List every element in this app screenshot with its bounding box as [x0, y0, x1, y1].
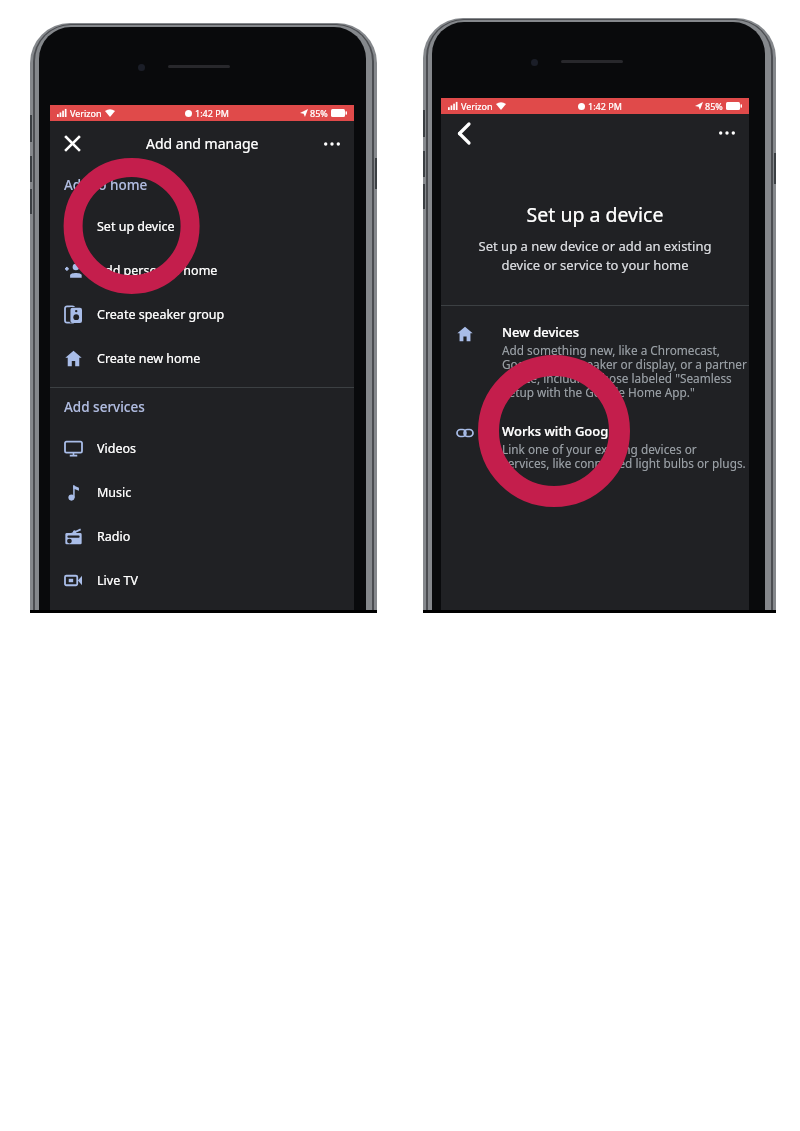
button[interactable]: More options — [705, 114, 749, 152]
staticText: Add services — [64, 398, 145, 416]
staticText: Music — [97, 484, 132, 501]
staticText: Live TV — [97, 572, 138, 589]
button[interactable]: Create speaker group — [50, 292, 354, 336]
staticText: Radio — [97, 528, 131, 545]
staticText: Works with Google — [502, 422, 620, 440]
button[interactable]: Close — [50, 121, 94, 166]
staticText: Add person to home — [97, 262, 218, 279]
staticText: Set up device — [97, 218, 175, 235]
staticText: Verizon — [70, 107, 102, 119]
button[interactable]: Back — [441, 114, 486, 152]
staticText: 85% — [310, 107, 328, 119]
button[interactable]: Works with Google — [441, 422, 749, 471]
button[interactable]: Add person to home — [50, 248, 354, 292]
button[interactable]: Live TV — [50, 558, 354, 602]
staticText: Add to home — [64, 176, 148, 194]
staticText: Verizon — [461, 100, 493, 112]
staticText: 85% — [705, 100, 723, 112]
button[interactable]: Videos — [50, 426, 354, 470]
button[interactable]: Music — [50, 470, 354, 514]
staticText: Set up a device — [441, 201, 749, 228]
button[interactable]: New devices — [441, 323, 749, 400]
button[interactable]: Set up device — [50, 204, 354, 248]
staticText: Link one of your existing devices or ser… — [502, 441, 746, 471]
staticText: Set up a new device or add an existing d… — [441, 237, 749, 274]
staticText: Create new home — [97, 350, 201, 367]
button[interactable]: Create new home — [50, 336, 354, 380]
staticText: 1:42 PM — [588, 100, 622, 112]
button[interactable]: Radio — [50, 514, 354, 558]
staticText: Create speaker group — [97, 306, 225, 323]
staticText: New devices — [502, 323, 579, 341]
staticText: Add and manage — [146, 134, 259, 153]
staticText: Videos — [97, 440, 137, 457]
staticText: Add something new, like a Chromecast, Go… — [502, 342, 747, 400]
staticText: 1:42 PM — [195, 107, 229, 119]
button[interactable]: More options — [310, 121, 354, 166]
